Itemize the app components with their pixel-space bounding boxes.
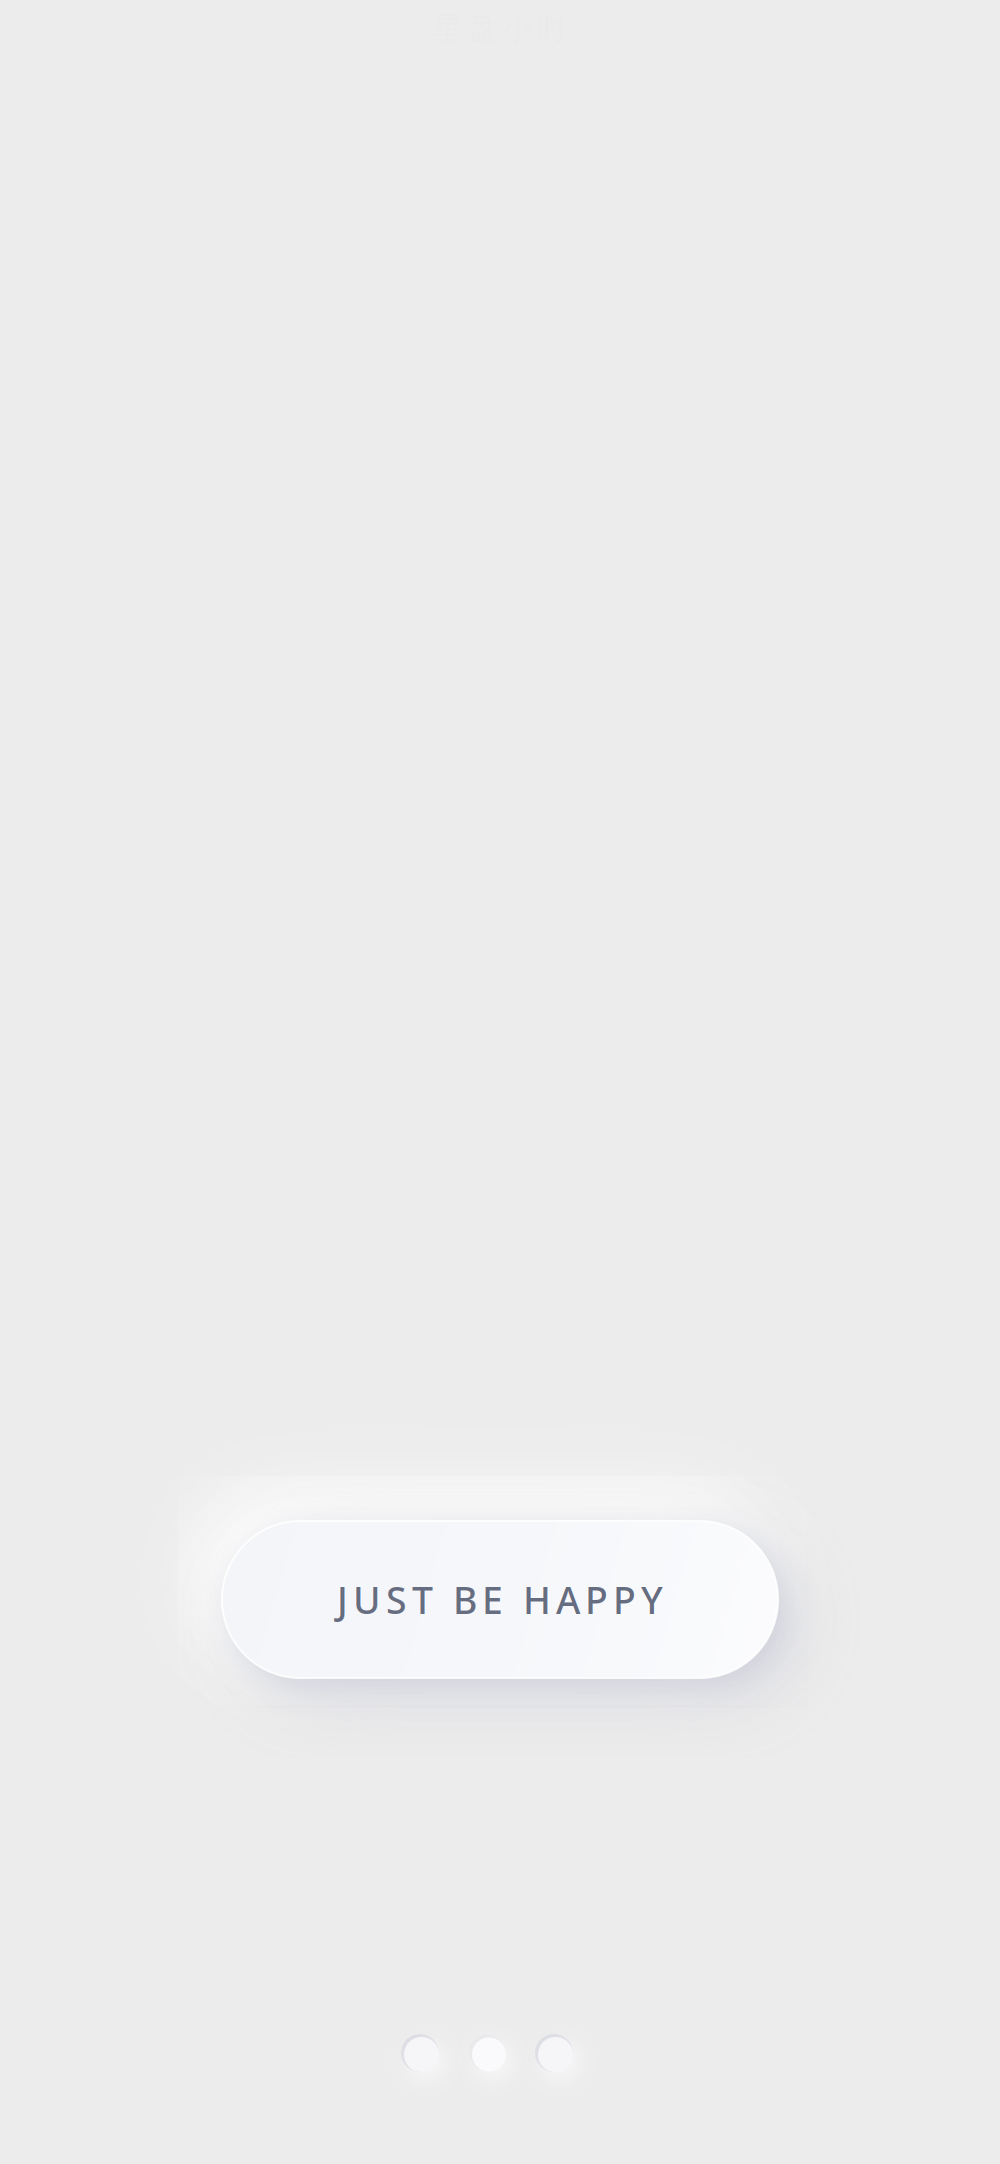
button[interactable]: JUST BE HAPPY [222, 1521, 778, 1678]
button[interactable]: Page 3 [535, 2034, 573, 2072]
button[interactable]: Page 1 [401, 2034, 439, 2072]
staticText: JUST BE HAPPY [337, 1575, 663, 1624]
button[interactable]: Page 2, current page [469, 2034, 506, 2071]
